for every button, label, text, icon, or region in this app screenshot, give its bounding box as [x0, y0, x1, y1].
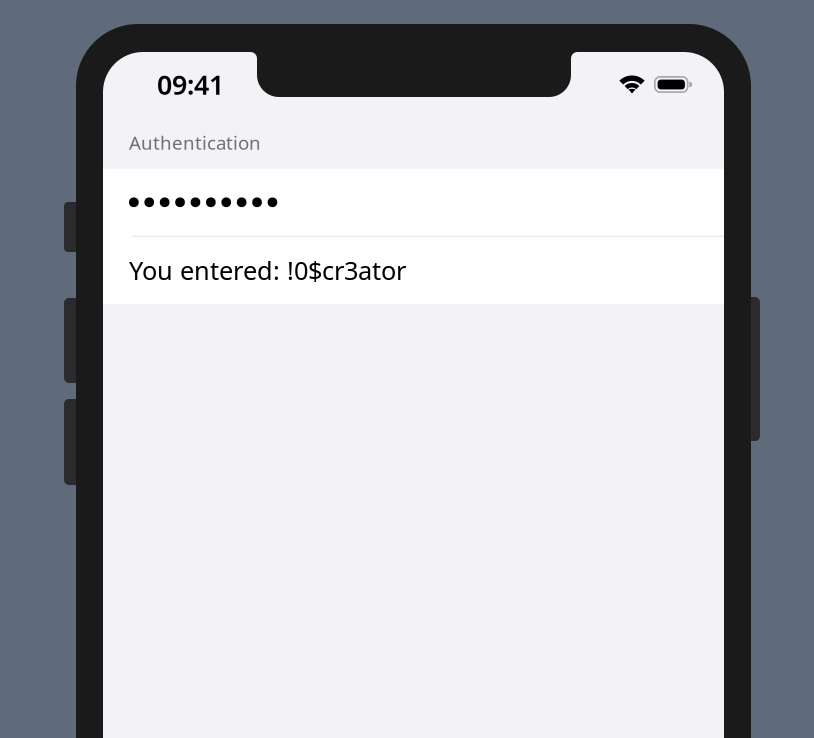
- button[interactable]: Password: [103, 169, 724, 236]
- staticText: 09:41: [157, 67, 224, 102]
- staticText: You entered: !0$cr3ator: [129, 253, 406, 287]
- staticText: Authentication: [129, 130, 261, 155]
